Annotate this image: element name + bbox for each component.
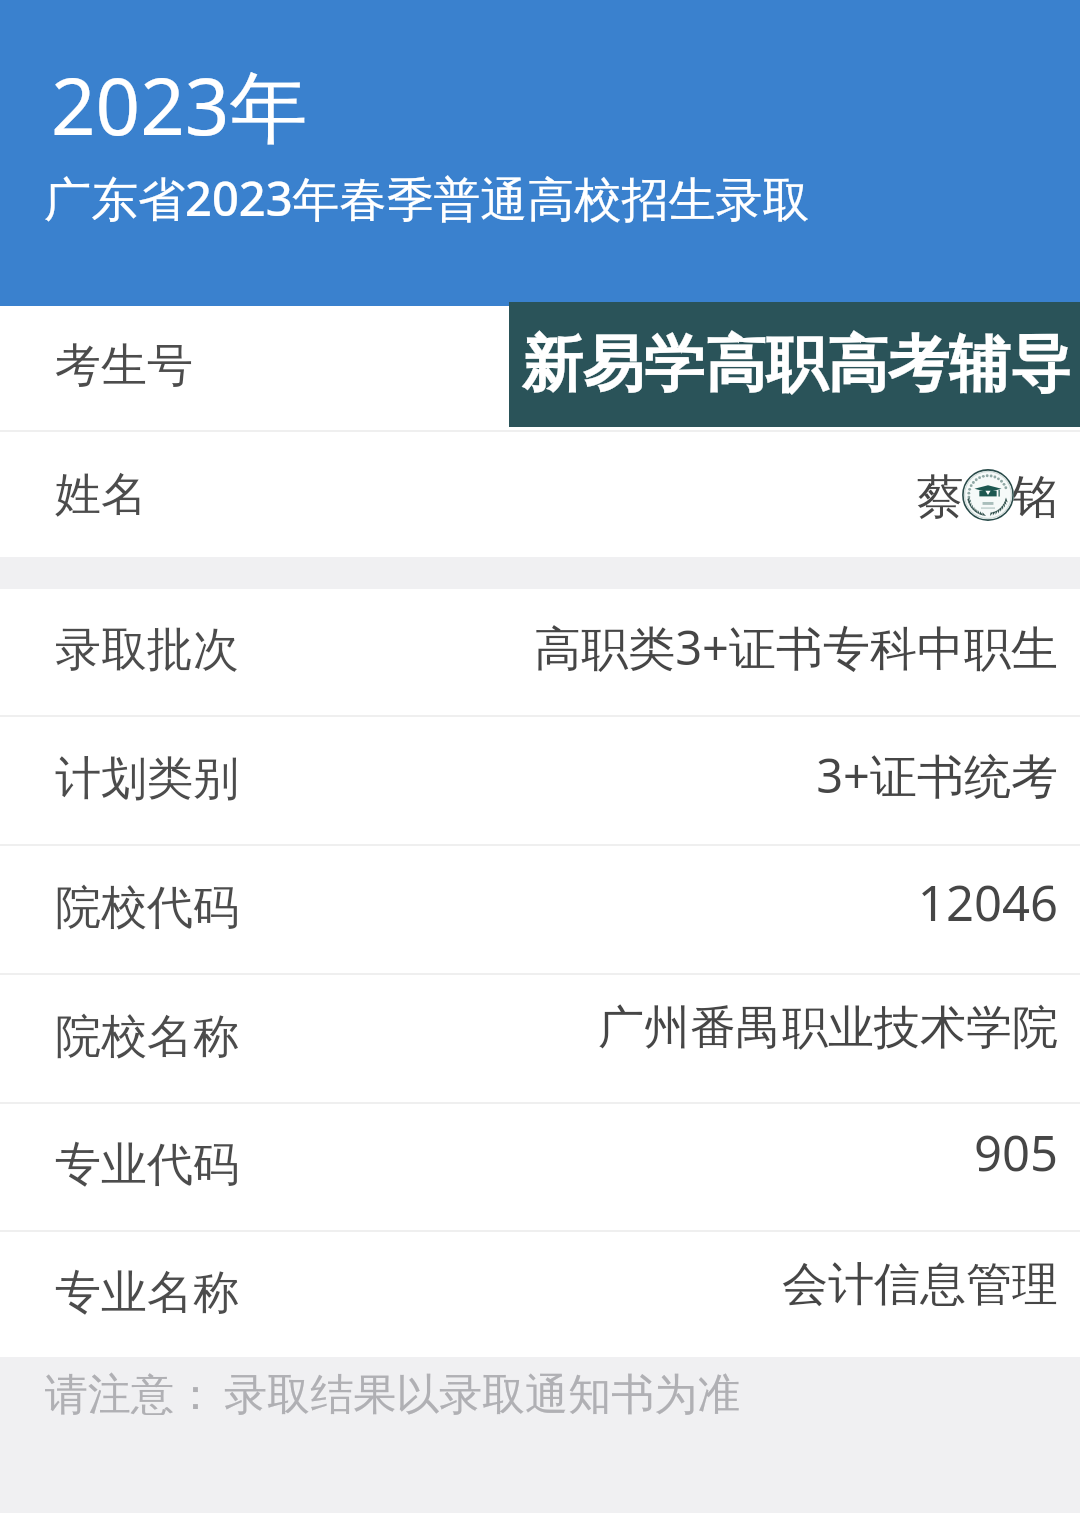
button[interactable]: 院校代码 xyxy=(0,846,1080,973)
staticText: 新易学高职高考辅导 xyxy=(522,326,1071,403)
staticText: 计划类别 xyxy=(55,750,239,808)
button[interactable]: 专业代码 xyxy=(0,1104,1080,1230)
staticText: 专业代码 xyxy=(55,1136,239,1194)
staticText: 考生号 xyxy=(55,337,193,395)
staticText: 姓名 xyxy=(55,466,147,524)
staticText: 录取批次 xyxy=(55,621,239,679)
staticText: 院校名称 xyxy=(55,1008,239,1066)
button[interactable]: 录取批次 xyxy=(0,589,1080,715)
other: 验证印章 xyxy=(962,469,1014,521)
button[interactable]: 姓名 xyxy=(0,432,1080,557)
button[interactable]: 院校名称 xyxy=(0,975,1080,1102)
staticText: 3+证书统考 xyxy=(816,743,1058,807)
staticText: 蔡 铭 xyxy=(917,463,1058,527)
staticText: 广东省2023年春季普通高校招生录取 xyxy=(44,166,810,230)
staticText: 2023年 xyxy=(51,52,308,159)
button[interactable]: 计划类别 xyxy=(0,717,1080,844)
button[interactable]: 专业名称 xyxy=(0,1232,1080,1357)
staticText: 12046 xyxy=(917,869,1058,936)
button[interactable]: 考生号 xyxy=(0,306,1080,430)
staticText: 请注意： 录取结果以录取通知书为准 xyxy=(45,1363,741,1422)
staticText: 会计信息管理 xyxy=(782,1256,1058,1314)
staticText: 905 xyxy=(973,1119,1058,1186)
staticText: 专业名称 xyxy=(55,1264,239,1322)
staticText: 广州番禺职业技术学院 xyxy=(598,999,1058,1057)
button[interactable]: 新易学高职高考辅导 xyxy=(509,302,1080,427)
staticText: 高职类3+证书专科中职生 xyxy=(534,615,1058,679)
staticText: 院校代码 xyxy=(55,879,239,937)
